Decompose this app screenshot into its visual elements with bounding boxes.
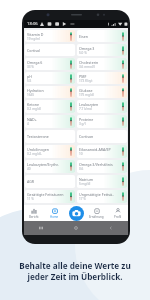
staticText: 33 % — [27, 65, 34, 69]
staticText: Urobilinogen — [27, 147, 50, 152]
button[interactable]: Cortison — [77, 130, 127, 143]
button[interactable]: Recents — [24, 221, 58, 235]
staticText: 18:06 — [27, 21, 38, 27]
staticText: Glukose — [79, 88, 93, 93]
staticText: Behalte alle deine Werte zu jeder Zeit i… — [0, 260, 150, 282]
staticText: PMF — [79, 74, 87, 79]
button[interactable]: AGR — [25, 175, 75, 188]
button[interactable]: Ungesättigte Fettsä.. — [77, 190, 127, 203]
button[interactable]: Gesättigte Fettsäuren — [25, 190, 75, 203]
button[interactable]: Bericht — [24, 205, 44, 221]
staticText: 4 — [27, 122, 29, 126]
staticText: Testosterone — [27, 134, 49, 139]
button[interactable]: Omega 3 — [77, 44, 127, 56]
staticText: 0.6 — [79, 167, 84, 171]
button[interactable]: Leukozyten — [77, 100, 127, 113]
staticText: Proteine — [79, 117, 94, 122]
staticText: 175 mg/dl — [79, 93, 94, 97]
button[interactable]: Home — [58, 221, 93, 235]
staticText: 1645 — [27, 93, 35, 97]
button[interactable]: Scan — [69, 206, 84, 221]
staticText: AGR — [27, 179, 35, 184]
staticText: Gesättigte Fettsäuren — [27, 192, 64, 197]
staticText: Cholesterin — [79, 60, 99, 65]
button[interactable]: Glukose — [77, 86, 127, 98]
button[interactable]: Vitamin D — [25, 30, 75, 42]
staticText: 7.7 k/mcl — [79, 107, 93, 111]
button[interactable]: Home — [44, 205, 65, 221]
staticText: Bericht — [29, 215, 39, 219]
staticText: Ketone — [27, 102, 39, 107]
button[interactable]: Leukozyten/Erythr.. — [25, 160, 75, 173]
staticText: 11 % — [27, 197, 34, 201]
button[interactable]: Ernährung — [86, 205, 107, 221]
staticText: 173 fl/cyt — [79, 79, 93, 83]
button[interactable]: Omega 3/Verhältnis — [77, 160, 127, 173]
staticText: NAD+ — [27, 117, 37, 122]
button[interactable]: Cholesterin — [77, 58, 127, 70]
staticText: 17 % — [79, 197, 86, 201]
staticText: Profil — [114, 215, 122, 219]
staticText: Omega 3 — [79, 46, 95, 51]
staticText: 3.6 mmol/l — [79, 65, 95, 69]
button[interactable]: Profil — [107, 205, 128, 221]
staticText: Natrium — [79, 177, 94, 182]
button[interactable]: Testosterone — [25, 130, 75, 143]
button[interactable]: Urobilinogen — [25, 145, 75, 158]
staticText: Cortison — [79, 134, 94, 139]
button[interactable]: Ketone — [25, 100, 75, 113]
staticText: 5.5 — [27, 79, 32, 83]
staticText: 19 ng/ml — [27, 37, 40, 41]
button[interactable]: Natrium — [77, 175, 127, 188]
staticText: 5.0 % — [79, 51, 87, 55]
staticText: Leukozyten/Erythr.. — [27, 162, 60, 167]
staticText: Omega 3/Verhältnis — [79, 162, 113, 167]
staticText: pH — [27, 74, 32, 79]
button[interactable]: Proteine — [77, 115, 127, 128]
button[interactable]: NAD+ — [25, 115, 75, 128]
staticText: Ernährung — [89, 215, 104, 219]
staticText: 40 — [27, 167, 31, 171]
staticText: 3 g/l — [79, 122, 86, 126]
button[interactable]: pH — [25, 72, 75, 84]
staticText: 0.3 mg/dl — [27, 107, 41, 111]
staticText: 0.2 mg/dL — [27, 152, 42, 156]
staticText: Ungesättigte Fettsä.. — [79, 192, 114, 197]
staticText: Hydration — [27, 88, 44, 93]
button[interactable]: Eisen — [77, 30, 127, 42]
staticText: 5 mg/dl — [79, 182, 91, 186]
staticText: Home — [50, 215, 59, 219]
staticText: Vitamin D — [27, 32, 44, 37]
button[interactable]: Eikosanoid-ARA/EP — [77, 145, 127, 158]
button[interactable]: Omega 6 — [25, 58, 75, 70]
staticText: Eisen — [79, 34, 88, 39]
staticText: Eikosanoid-ARA/EP — [79, 147, 111, 152]
button[interactable]: Hydration — [25, 86, 75, 98]
button[interactable]: Cortisol — [25, 44, 75, 56]
button[interactable]: PMF — [77, 72, 127, 84]
staticText: Leukozyten — [79, 102, 99, 107]
staticText: Omega 6 — [27, 60, 43, 65]
staticText: Cortisol — [27, 48, 40, 53]
staticText: 10 — [79, 152, 83, 156]
